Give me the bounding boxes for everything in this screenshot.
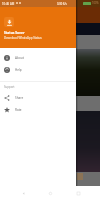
staticText: Rate (15, 108, 22, 112)
button[interactable]: Back (18, 188, 28, 198)
button[interactable]: Rate (0, 104, 76, 116)
button[interactable]: Recent apps (73, 188, 83, 198)
staticText: Help (15, 68, 22, 72)
staticText: Share (15, 96, 24, 100)
button[interactable]: Help (0, 64, 76, 76)
staticText: 10:46 AM (2, 2, 15, 6)
button[interactable]: Home (45, 188, 55, 198)
staticText: 100% (92, 1, 99, 5)
staticText: Status Saver (4, 30, 25, 34)
button[interactable]: Share (0, 92, 76, 104)
button[interactable]: About (0, 52, 76, 64)
staticText: About (15, 56, 24, 60)
staticText: 0.00 K/s (57, 2, 67, 6)
staticText: Support (4, 85, 15, 89)
staticText: Download WhatsApp Status (4, 36, 42, 40)
